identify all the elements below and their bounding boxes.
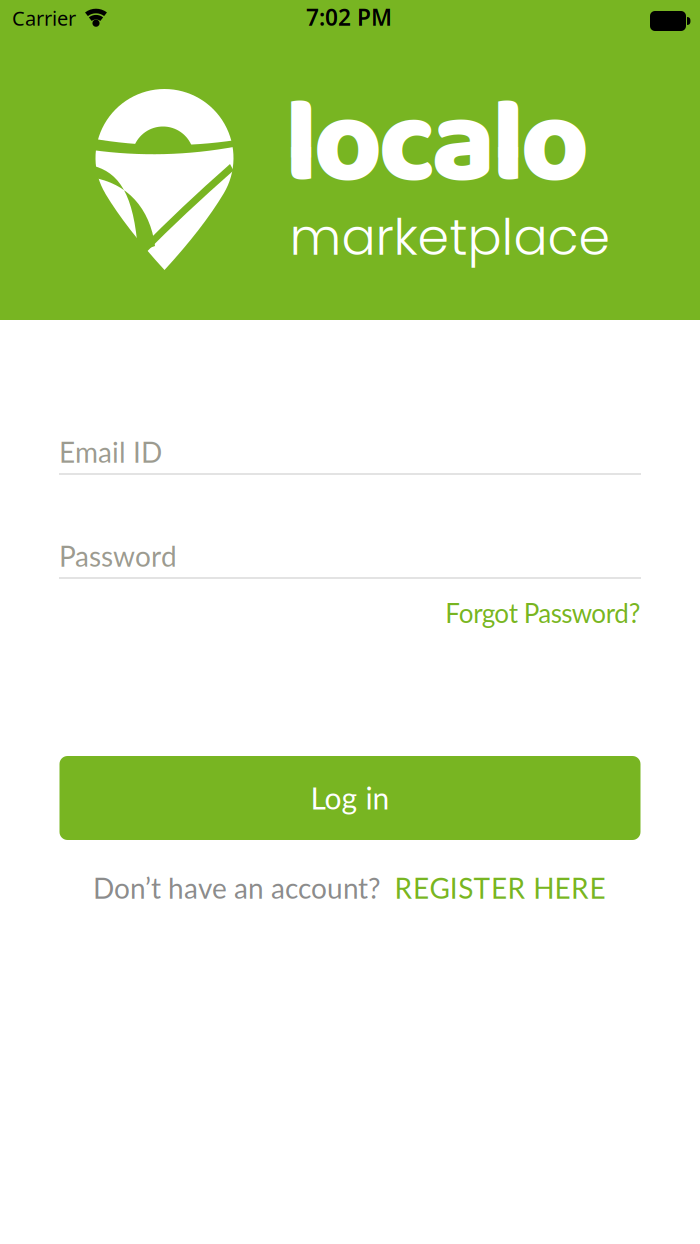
staticText: REGISTER HERE <box>395 871 605 905</box>
staticText: Forgot Password? <box>445 597 641 629</box>
staticText: Carrier <box>12 5 76 31</box>
staticText: marketplace <box>289 201 610 272</box>
button[interactable]: REGISTER HERE <box>395 871 605 905</box>
staticText: Don’t have an account? <box>93 871 381 905</box>
staticText: Password <box>59 539 177 573</box>
secureTextField[interactable]: Password <box>59 539 641 573</box>
staticText: Email ID <box>59 435 162 469</box>
button[interactable]: Forgot Password? <box>445 597 641 629</box>
staticText: Log in <box>310 780 389 816</box>
button[interactable]: Log in <box>59 756 640 840</box>
textField[interactable]: Email ID <box>59 435 641 469</box>
staticText: 7:02 PM <box>306 2 392 32</box>
staticText: localo <box>284 52 589 240</box>
